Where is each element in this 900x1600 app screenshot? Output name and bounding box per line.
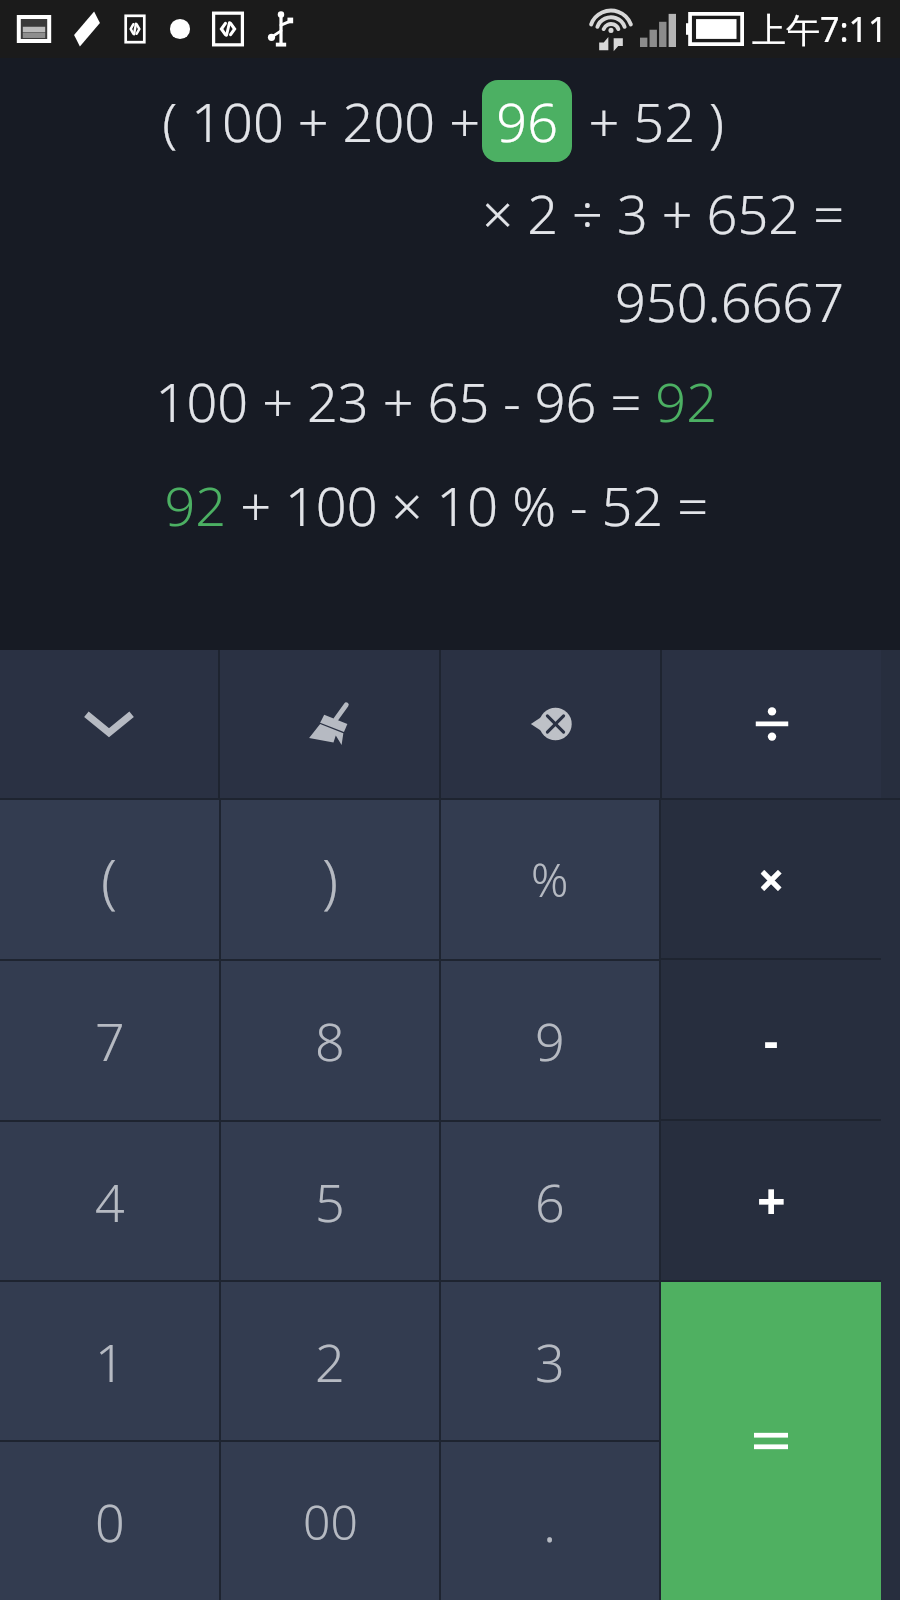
button[interactable]: 2 <box>221 1282 439 1440</box>
staticText: ( 100 + 200 + <box>148 84 480 158</box>
button[interactable]: 1 <box>0 1282 219 1440</box>
staticText: - <box>764 1010 779 1070</box>
staticText: 0 <box>95 1486 125 1557</box>
staticText: ) <box>322 840 339 919</box>
staticText: 7 <box>95 1005 125 1076</box>
button[interactable]: Divide <box>662 650 881 798</box>
staticText: 1 <box>95 1326 125 1397</box>
button[interactable]: Collapse <box>0 650 218 798</box>
staticText: + 52 ) <box>574 84 724 158</box>
button[interactable]: 7 <box>0 961 219 1120</box>
button[interactable]: Clear all <box>220 650 439 798</box>
staticText: 100 + 23 + 65 - 96 = 92 <box>155 364 717 438</box>
staticText: % <box>531 848 569 911</box>
staticText: 96 <box>496 84 558 158</box>
button[interactable]: 5 <box>221 1122 439 1280</box>
staticText: 4 <box>95 1166 125 1237</box>
staticText: 上午7:11 <box>752 6 888 52</box>
staticText: 00 <box>303 1489 358 1554</box>
button[interactable]: 8 <box>221 961 439 1120</box>
staticText: 8 <box>315 1005 345 1076</box>
button[interactable]: + <box>661 1121 881 1280</box>
button[interactable]: 3 <box>441 1282 659 1440</box>
button[interactable]: ( <box>0 800 219 959</box>
staticText: 950.6667 <box>614 264 844 338</box>
staticText: + <box>757 1167 786 1235</box>
staticText: 9 <box>535 1005 565 1076</box>
button[interactable]: × <box>661 800 881 958</box>
button[interactable]: 0 <box>0 1442 219 1600</box>
button[interactable]: 4 <box>0 1122 219 1280</box>
button[interactable]: . <box>441 1442 659 1600</box>
staticText: 3 <box>535 1326 565 1397</box>
staticText: 6 <box>535 1166 565 1237</box>
button[interactable] <box>661 1282 881 1600</box>
button[interactable]: % <box>441 800 659 959</box>
staticText: . <box>543 1484 557 1558</box>
button[interactable]: ) <box>221 800 439 959</box>
staticText: × 2 ÷ 3 + 652 = <box>482 176 844 250</box>
button[interactable]: 9 <box>441 961 659 1120</box>
button[interactable]: - <box>661 960 881 1119</box>
staticText: 5 <box>315 1166 345 1237</box>
button[interactable]: 00 <box>221 1442 439 1600</box>
button[interactable]: Backspace <box>441 650 660 798</box>
staticText: ( <box>101 840 118 919</box>
staticText: × <box>758 848 785 911</box>
staticText: 92 + 100 × 10 % - 52 = <box>164 468 708 542</box>
button[interactable]: 6 <box>441 1122 659 1280</box>
staticText: 2 <box>315 1326 345 1397</box>
